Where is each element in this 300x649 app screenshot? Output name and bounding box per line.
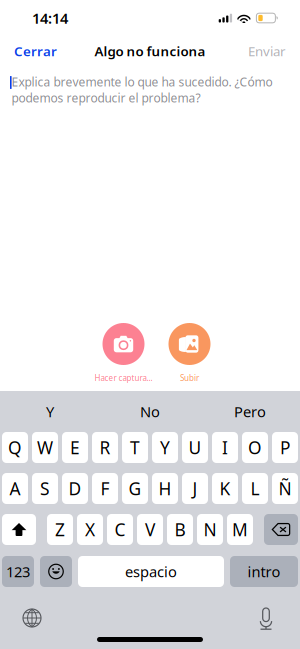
- button[interactable]: Subir: [153, 323, 225, 379]
- button[interactable]: M: [227, 514, 253, 545]
- button[interactable]: D: [62, 473, 88, 504]
- staticText: Hacer captura...: [94, 373, 152, 383]
- button[interactable]: K: [212, 473, 238, 504]
- button[interactable]: Hacer captura...: [87, 323, 159, 379]
- button[interactable]: B: [167, 514, 193, 545]
- staticText: P: [280, 436, 290, 459]
- staticText: Enviar: [248, 42, 286, 60]
- staticText: Explica brevemente lo que ha sucedido. ¿…: [12, 74, 273, 106]
- staticText: Algo no funciona: [94, 42, 205, 60]
- staticText: W: [37, 436, 53, 459]
- button[interactable]: Z: [47, 514, 73, 545]
- button[interactable]: Q: [2, 432, 28, 463]
- staticText: 14:14: [32, 8, 68, 28]
- staticText: O: [248, 436, 262, 459]
- staticText: U: [188, 436, 201, 459]
- button[interactable]: 123: [2, 556, 34, 587]
- button[interactable]: F: [92, 473, 118, 504]
- button[interactable]: Ñ: [272, 473, 298, 504]
- button[interactable]: No: [100, 391, 200, 432]
- staticText: I: [222, 436, 228, 459]
- staticText: No: [140, 402, 160, 421]
- staticText: Y: [160, 436, 170, 459]
- button[interactable]: Mayúsculas: [2, 514, 36, 545]
- staticText: F: [100, 477, 109, 500]
- staticText: H: [158, 477, 171, 500]
- button[interactable]: Dictado: [253, 605, 279, 631]
- staticText: Q: [8, 436, 22, 459]
- staticText: G: [128, 477, 141, 500]
- button[interactable]: H: [152, 473, 178, 504]
- staticText: Z: [55, 518, 65, 541]
- button[interactable]: S: [32, 473, 58, 504]
- button[interactable]: Cambiar teclado: [19, 605, 45, 631]
- staticText: Y: [46, 402, 54, 421]
- button[interactable]: G: [122, 473, 148, 504]
- button[interactable]: C: [107, 514, 133, 545]
- button[interactable]: O: [242, 432, 268, 463]
- button[interactable]: W: [32, 432, 58, 463]
- staticText: S: [40, 477, 50, 500]
- staticText: L: [250, 477, 259, 500]
- button[interactable]: X: [77, 514, 103, 545]
- button[interactable]: V: [137, 514, 163, 545]
- button[interactable]: I: [212, 432, 238, 463]
- staticText: D: [68, 477, 81, 500]
- staticText: J: [192, 477, 197, 500]
- staticText: M: [232, 518, 248, 541]
- button[interactable]: Cerrar: [13, 37, 58, 65]
- staticText: N: [203, 518, 216, 541]
- staticText: R: [99, 436, 110, 459]
- staticText: Ñ: [278, 477, 291, 500]
- button[interactable]: Y: [152, 432, 178, 463]
- button[interactable]: U: [182, 432, 208, 463]
- staticText: T: [130, 436, 140, 459]
- button[interactable]: Y: [0, 391, 100, 432]
- button[interactable]: R: [92, 432, 118, 463]
- button[interactable]: N: [197, 514, 223, 545]
- staticText: E: [70, 436, 80, 459]
- button[interactable]: A: [2, 473, 28, 504]
- staticText: 123: [6, 562, 30, 581]
- staticText: K: [219, 477, 230, 500]
- staticText: Subir: [180, 373, 199, 383]
- button[interactable]: J: [182, 473, 208, 504]
- button[interactable]: Pero: [200, 391, 300, 432]
- staticText: intro: [247, 562, 280, 581]
- button[interactable]: intro: [230, 556, 298, 587]
- button[interactable]: L: [242, 473, 268, 504]
- staticText: espacio: [125, 562, 177, 581]
- button[interactable]: Borrar: [264, 514, 298, 545]
- staticText: X: [85, 518, 95, 541]
- staticText: A: [9, 477, 20, 500]
- button[interactable]: P: [272, 432, 298, 463]
- staticText: Pero: [234, 402, 266, 421]
- staticText: C: [114, 518, 125, 541]
- staticText: V: [145, 518, 155, 541]
- button[interactable]: Enviar: [247, 37, 287, 65]
- button[interactable]: E: [62, 432, 88, 463]
- staticText: B: [174, 518, 185, 541]
- staticText: Cerrar: [14, 42, 57, 60]
- button[interactable]: espacio: [78, 556, 224, 587]
- button[interactable]: Emoji: [40, 556, 72, 587]
- button[interactable]: T: [122, 432, 148, 463]
